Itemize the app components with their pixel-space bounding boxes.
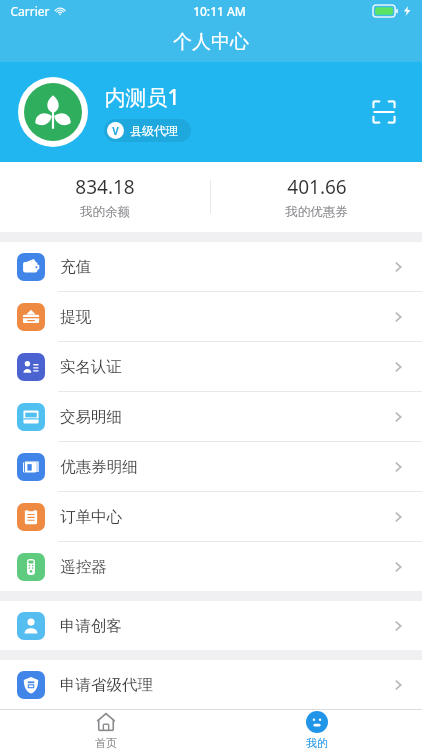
button[interactable]: Scan QR code (364, 92, 404, 132)
staticText: Carrier (10, 3, 50, 19)
button[interactable]: 遥控器 (0, 542, 422, 591)
staticText: 充值 (60, 257, 91, 277)
staticText: 834.18 (75, 174, 135, 200)
staticText: 内测员1 (104, 83, 180, 112)
button[interactable]: 优惠券明细 (0, 442, 422, 491)
staticText: 我的 (306, 736, 328, 750)
staticText: 实名认证 (60, 357, 122, 377)
button[interactable]: 申请创客 (0, 601, 422, 650)
staticText: 我的余额 (80, 204, 130, 220)
staticText: 交易明细 (60, 407, 122, 427)
button[interactable]: 我的 (211, 710, 422, 750)
staticText: 10:11 AM (193, 3, 246, 19)
button[interactable]: 订单中心 (0, 492, 422, 541)
staticText: 县级代理 (130, 123, 178, 138)
staticText: V (112, 124, 119, 138)
button[interactable]: 充值 (0, 242, 422, 291)
staticText: 提现 (60, 307, 91, 327)
button[interactable]: 401.66 (211, 162, 422, 232)
staticText: 申请省级代理 (60, 675, 153, 695)
staticText: 首页 (95, 736, 117, 750)
staticText: 401.66 (287, 174, 347, 200)
staticText: 订单中心 (60, 507, 122, 527)
staticText: 申请创客 (60, 616, 122, 636)
staticText: 遥控器 (60, 557, 107, 577)
button[interactable]: 交易明细 (0, 392, 422, 441)
button[interactable]: 实名认证 (0, 342, 422, 391)
button[interactable]: 834.18 (0, 162, 210, 232)
staticText: 优惠券明细 (60, 457, 138, 477)
button[interactable]: 申请省级代理 (0, 660, 422, 709)
button[interactable]: 首页 (0, 710, 211, 750)
staticText: 我的优惠券 (285, 204, 348, 220)
button[interactable]: 提现 (0, 292, 422, 341)
staticText: 个人中心 (173, 30, 249, 54)
